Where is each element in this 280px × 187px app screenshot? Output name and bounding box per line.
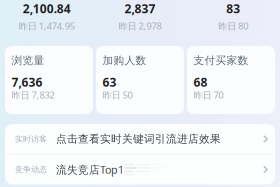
- staticText: 实时访客: [15, 134, 47, 144]
- button[interactable]: 竞争动态: [5, 154, 275, 184]
- staticText: 支付买家数: [193, 54, 248, 67]
- button[interactable]: 支付买家数: [187, 46, 275, 114]
- staticText: 63: [102, 74, 116, 90]
- staticText: 点击查看实时关键词引流进店效果: [56, 132, 221, 145]
- staticText: 2,837: [124, 0, 155, 16]
- staticText: 昨日 80: [218, 20, 248, 32]
- staticText: 昨日 50: [102, 89, 132, 101]
- staticText: 83: [226, 0, 240, 16]
- staticText: 加购人数: [102, 54, 146, 67]
- staticText: 昨日 7,832: [11, 89, 54, 101]
- staticText: 7,636: [11, 74, 42, 90]
- staticText: 昨日 70: [193, 89, 223, 101]
- staticText: 68: [193, 74, 207, 90]
- staticText: 昨日 2,978: [118, 20, 161, 32]
- staticText: 流失竞店Top1: [56, 162, 124, 177]
- staticText: 浏览量: [11, 54, 44, 67]
- staticText: 2,100.84: [23, 0, 71, 16]
- button[interactable]: 加购人数: [96, 46, 184, 114]
- staticText: 昨日 1,474.95: [19, 20, 75, 32]
- button[interactable]: 实时访客: [5, 124, 275, 154]
- button[interactable]: 浏览量: [5, 46, 93, 114]
- staticText: 竞争动态: [15, 165, 47, 174]
